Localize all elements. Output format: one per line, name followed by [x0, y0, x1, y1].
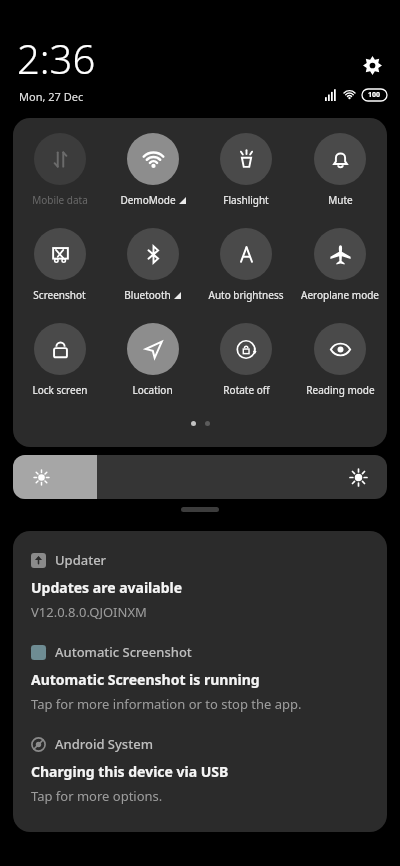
staticText: Mon, 27 Dec: [19, 89, 84, 104]
button[interactable]: Auto brightness: [199, 228, 293, 323]
staticText: DemoMode: [120, 193, 176, 207]
staticText: Lock screen: [32, 383, 88, 397]
staticText: Auto brightness: [208, 288, 284, 302]
staticText: Tap for more options.: [31, 787, 163, 805]
staticText: Updates are available: [31, 578, 183, 597]
button[interactable]: Lock screen: [13, 323, 106, 418]
staticText: Rotate off: [223, 383, 270, 397]
staticText: Automatic Screenshot: [55, 643, 192, 661]
button[interactable]: Rotate off: [199, 323, 293, 418]
staticText: Location: [132, 383, 173, 397]
button[interactable]: Settings: [355, 48, 389, 82]
staticText: Tap for more information or to stop the …: [31, 695, 302, 713]
button[interactable]: Flashlight: [199, 133, 293, 228]
button[interactable]: Bluetooth: [106, 228, 199, 323]
staticText: Flashlight: [223, 193, 269, 207]
button[interactable]: DemoMode: [106, 133, 199, 228]
staticText: V12.0.8.0.QJOINXM: [31, 603, 147, 621]
staticText: Reading mode: [306, 383, 375, 397]
button[interactable]: Location: [106, 323, 199, 418]
staticText: 2:36: [17, 31, 96, 85]
button[interactable]: Aeroplane mode: [293, 228, 387, 323]
button[interactable]: Android System: [31, 735, 371, 805]
button[interactable]: Mobile data: [13, 133, 106, 228]
staticText: Automatic Screenshot is running: [31, 670, 260, 689]
button[interactable]: Mute: [293, 133, 387, 228]
staticText: Mute: [328, 193, 353, 207]
button[interactable]: Automatic Screenshot: [31, 643, 371, 713]
button[interactable]: Updater: [31, 551, 371, 621]
staticText: Charging this device via USB: [31, 762, 229, 781]
staticText: Android System: [55, 735, 153, 753]
button[interactable]: Brightness: [13, 455, 387, 499]
staticText: Mobile data: [32, 193, 88, 207]
button[interactable]: Reading mode: [293, 323, 387, 418]
staticText: Bluetooth: [124, 288, 171, 302]
staticText: 100: [368, 90, 381, 100]
staticText: Screenshot: [33, 288, 86, 302]
staticText: Aeroplane mode: [301, 288, 379, 302]
staticText: Updater: [55, 551, 107, 569]
button[interactable]: Screenshot: [13, 228, 106, 323]
